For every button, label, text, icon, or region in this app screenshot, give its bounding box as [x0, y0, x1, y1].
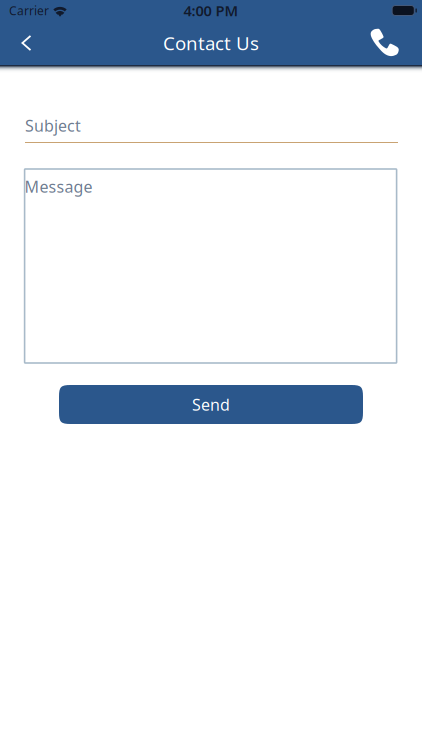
staticText: 4:00 PM	[183, 1, 238, 20]
button[interactable]: Call	[370, 21, 422, 65]
button[interactable]: Message	[25, 169, 397, 363]
staticText: Send	[192, 394, 230, 415]
button[interactable]: Back	[0, 21, 53, 65]
staticText: Contact Us	[163, 31, 259, 55]
staticText: Message	[25, 176, 93, 197]
staticText: Subject	[25, 115, 81, 136]
button[interactable]: Subject	[25, 115, 398, 143]
staticText: Carrier	[9, 2, 49, 18]
button[interactable]: Send	[59, 385, 363, 424]
